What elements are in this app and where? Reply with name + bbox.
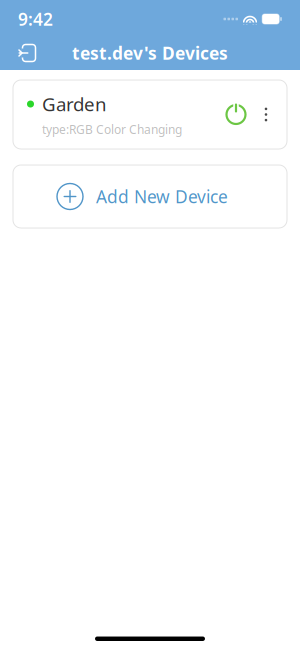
staticText: Garden xyxy=(42,92,107,116)
button[interactable]: Add New Device xyxy=(13,165,287,228)
staticText: Add New Device xyxy=(96,185,228,208)
staticText: test.dev's Devices xyxy=(72,41,228,64)
staticText: 9:42 xyxy=(18,7,53,30)
button[interactable]: More options xyxy=(253,94,279,134)
staticText: type:RGB Color Changing xyxy=(42,121,182,137)
button[interactable]: Toggle power xyxy=(219,94,253,134)
button[interactable]: Sign out xyxy=(6,36,46,70)
